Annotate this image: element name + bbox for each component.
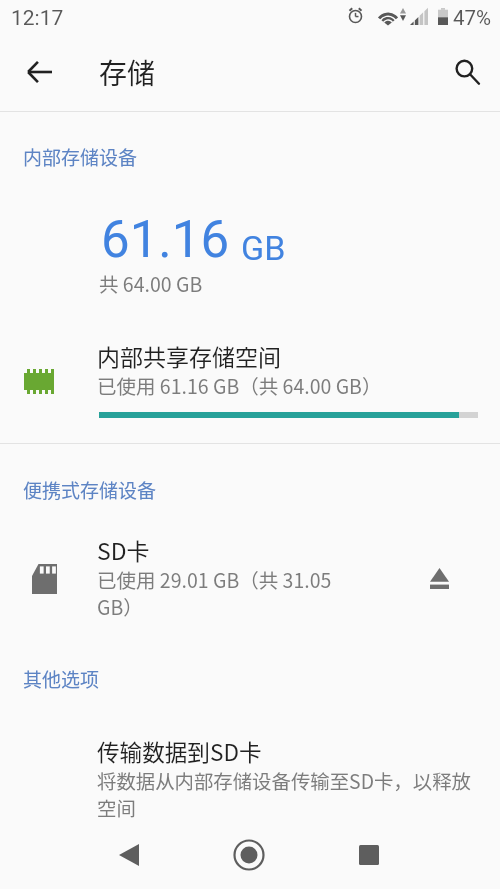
staticText: 内部共享存储空间 [97,339,281,372]
staticText: GB [241,228,286,268]
button[interactable]: Home [219,825,279,885]
staticText: 已使用 61.16 GB（共 64.00 GB） [97,371,382,399]
staticText: 将数据从内部存储设备传输至SD卡，以释放空间 [97,766,489,821]
staticText: 其他选项 [23,665,100,693]
button[interactable]: Recent apps [339,825,399,885]
staticText: 存储 [99,52,156,93]
button[interactable]: Back [99,825,159,885]
staticText: 共 64.00 GB [99,269,203,297]
staticText: SD卡 [97,533,150,566]
button[interactable]: 内部共享存储空间 [0,335,500,403]
staticText: 47% [453,6,492,30]
button[interactable]: 传输数据到SD卡 [0,730,500,826]
button[interactable]: Eject SD card [416,555,462,601]
button[interactable]: Back [14,46,66,98]
staticText: 内部存储设备 [23,143,138,171]
staticText: 已使用 29.01 GB（共 31.05 GB） [97,565,345,621]
staticText: 便携式存储设备 [23,476,157,504]
button[interactable]: Search [441,46,493,98]
staticText: 12:17 [11,6,64,31]
staticText: 61.16 [101,210,230,270]
button[interactable]: SD卡 [0,530,500,626]
staticText: 传输数据到SD卡 [97,735,262,768]
